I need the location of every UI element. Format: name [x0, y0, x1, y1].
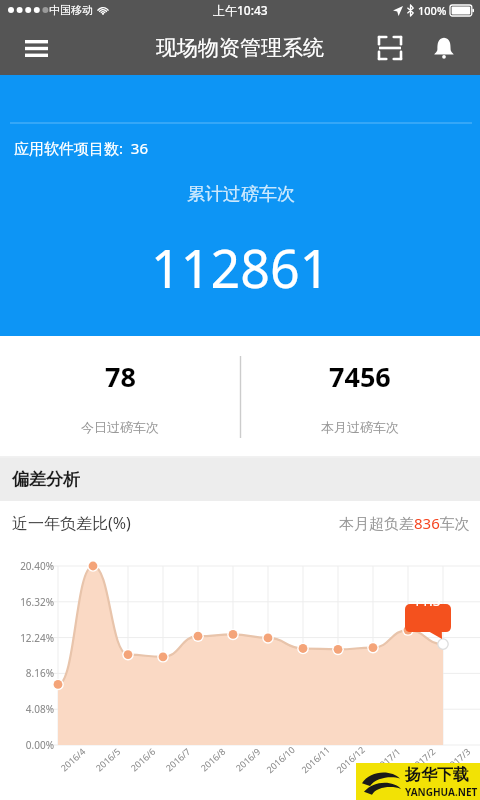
- staticText: 本月超负差836车次: [339, 513, 470, 533]
- staticText: 8.16%: [10, 666, 54, 680]
- staticText: 累计过磅车次: [187, 183, 295, 206]
- staticText: 2016/12: [333, 743, 367, 775]
- staticText: 近一年负差比(%): [12, 512, 131, 534]
- staticText: 2016/8: [198, 744, 228, 773]
- staticText: 本月过磅车次: [321, 419, 399, 435]
- staticText: 112861: [151, 232, 330, 303]
- staticText: 16.32%: [10, 595, 54, 609]
- staticText: 12.24%: [10, 631, 54, 645]
- staticText: 11.5: [413, 591, 441, 610]
- staticText: 中国移动: [49, 3, 93, 17]
- staticText: 2016/7: [163, 744, 193, 773]
- staticText: 2017/3: [443, 744, 473, 773]
- staticText: 上午10:43: [213, 2, 268, 18]
- button[interactable]: Notifications: [422, 26, 466, 70]
- staticText: 0.00%: [10, 738, 54, 752]
- staticText: 2016/5: [93, 744, 123, 773]
- staticText: YANGHUA.NET: [405, 785, 478, 799]
- staticText: 2017/1: [373, 744, 403, 773]
- staticText: 7456: [329, 358, 391, 395]
- staticText: 今日过磅车次: [81, 419, 159, 435]
- staticText: 20.40%: [10, 559, 54, 573]
- staticText: 偏差分析: [12, 469, 80, 490]
- staticText: 2016/9: [233, 744, 263, 773]
- staticText: 2016/10: [263, 743, 297, 775]
- button[interactable]: Scan: [368, 26, 412, 70]
- staticText: 现场物资管理系统: [156, 35, 324, 61]
- staticText: 应用软件项目数: 36: [14, 138, 148, 158]
- staticText: 2016/11: [298, 743, 332, 775]
- staticText: 扬华下载: [405, 765, 469, 785]
- staticText: 2016/6: [128, 744, 158, 773]
- staticText: 2017/2: [408, 744, 438, 773]
- staticText: 78: [105, 358, 136, 395]
- button[interactable]: 7456: [240, 336, 480, 458]
- button[interactable]: Menu: [14, 26, 58, 70]
- staticText: 100%: [418, 3, 447, 18]
- staticText: 4.08%: [10, 702, 54, 716]
- button[interactable]: 78: [0, 336, 240, 458]
- staticText: 2016/4: [58, 744, 88, 773]
